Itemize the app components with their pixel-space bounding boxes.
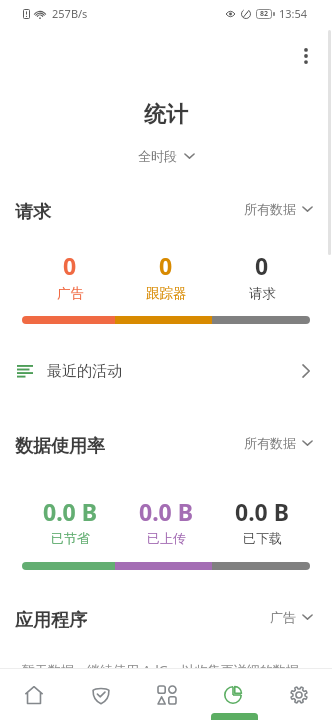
button[interactable]: Home	[0, 669, 67, 720]
staticText: 所有数据	[244, 201, 296, 217]
staticText: 请求	[249, 285, 276, 302]
staticText: 数据使用率	[15, 435, 105, 458]
button[interactable]: 全时段	[132, 144, 201, 168]
staticText: 已下载	[243, 530, 282, 546]
staticText: 已节省	[51, 530, 90, 546]
button[interactable]: Protection	[67, 669, 134, 720]
button[interactable]: 最近的活动	[0, 348, 332, 394]
button[interactable]: 广告	[268, 605, 315, 629]
staticText: 0	[63, 250, 77, 281]
staticText: 0	[255, 250, 269, 281]
button[interactable]: 所有数据	[242, 431, 315, 455]
staticText: 已上传	[147, 530, 186, 546]
button[interactable]: Apps	[134, 669, 200, 720]
button[interactable]: 所有数据	[242, 197, 315, 221]
staticText: 请求	[15, 201, 51, 224]
staticText: 0.0 B	[139, 496, 194, 527]
staticText: 全时段	[138, 148, 177, 164]
staticText: 257B/s	[52, 6, 88, 21]
staticText: 82	[260, 9, 269, 19]
staticText: 13:54	[279, 6, 308, 21]
button[interactable]: Statistics	[200, 669, 266, 720]
staticText: 统计	[0, 101, 332, 129]
staticText: 跟踪器	[146, 285, 187, 302]
staticText: 广告	[270, 609, 296, 625]
staticText: 所有数据	[244, 435, 296, 451]
staticText: 应用程序	[15, 609, 87, 632]
staticText: 0.0 B	[235, 496, 290, 527]
staticText: 0	[159, 250, 173, 281]
button[interactable]: Settings	[266, 669, 332, 720]
staticText: 0.0 B	[43, 496, 98, 527]
staticText: 最近的活动	[47, 362, 122, 381]
staticText: 广告	[57, 285, 84, 302]
button[interactable]: More options	[288, 38, 324, 74]
staticText: 暂无数据，继续使用 AdG… 以收集更详细的数据	[22, 661, 299, 679]
